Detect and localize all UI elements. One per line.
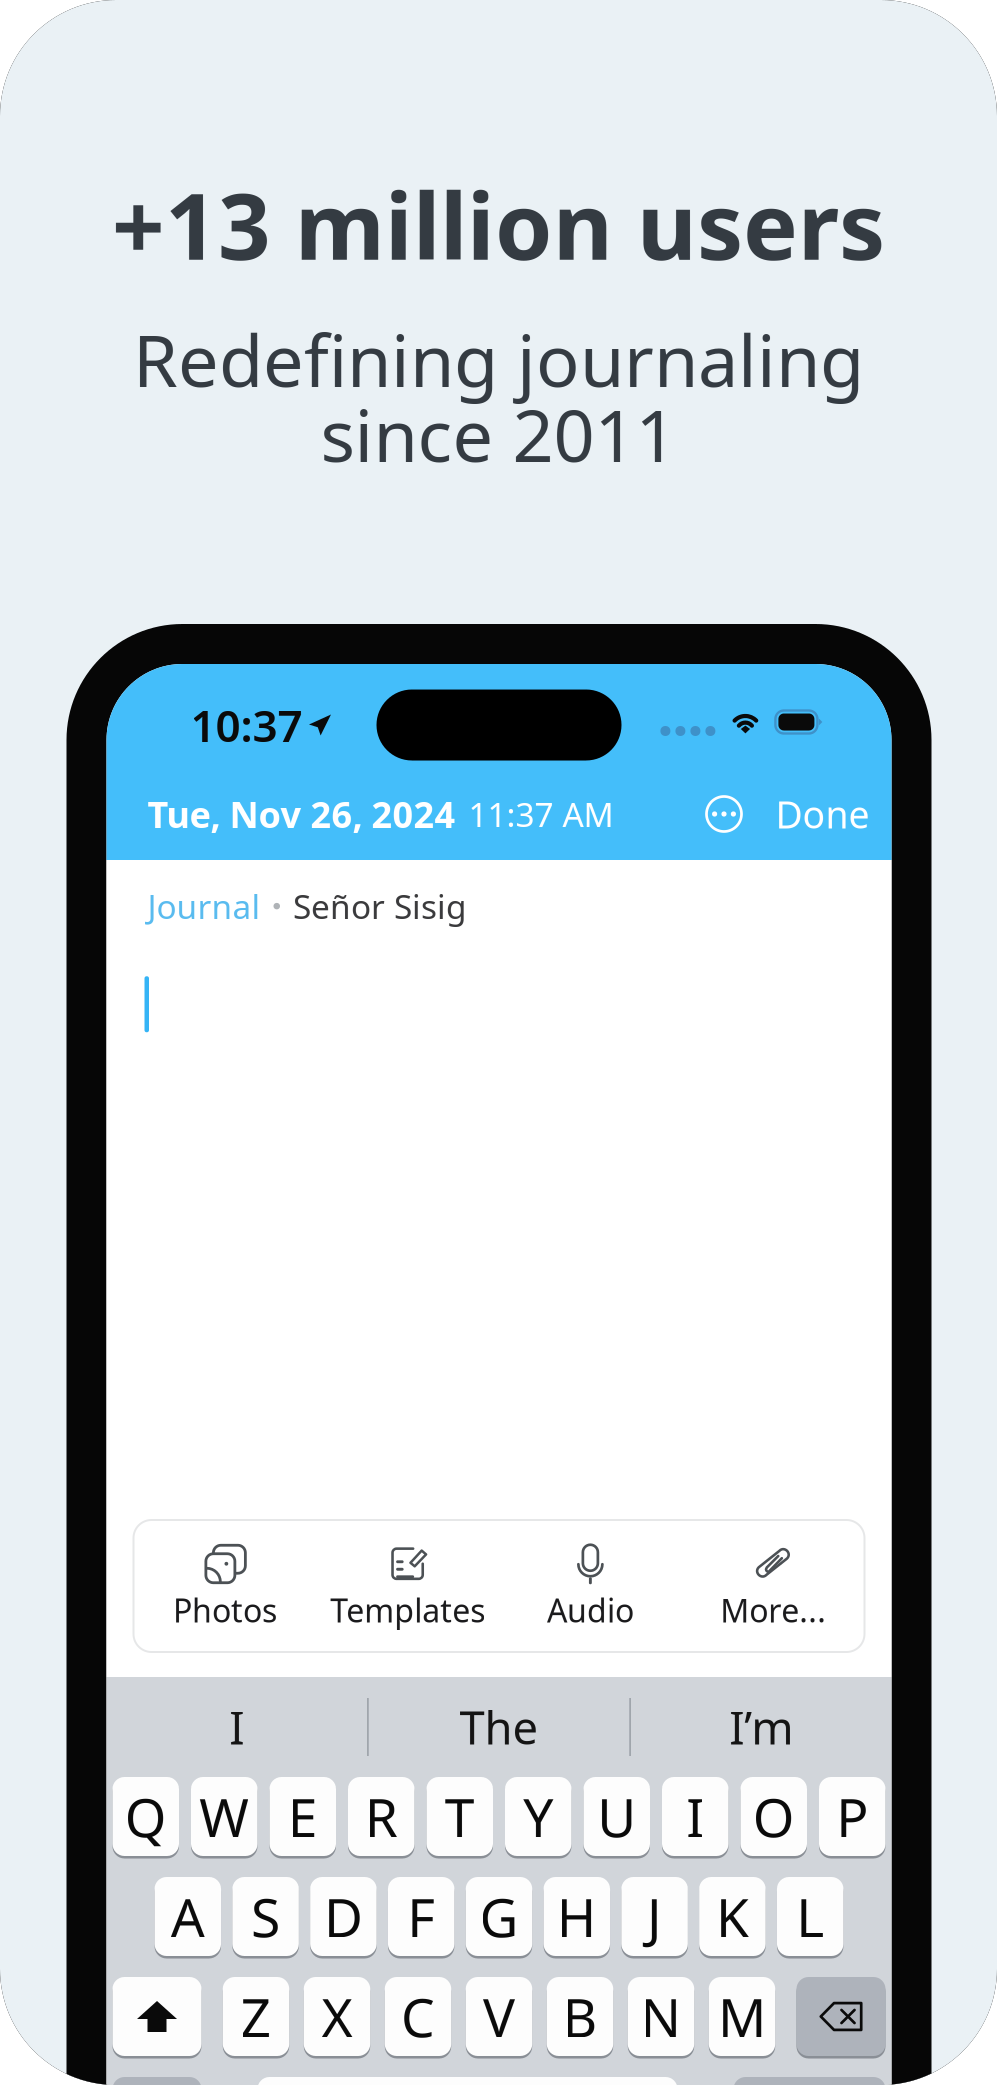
button[interactable]: H — [543, 1877, 610, 1956]
button[interactable]: More... — [682, 1520, 865, 1652]
staticText: N — [640, 1981, 681, 2052]
button[interactable]: C — [385, 1977, 451, 2056]
button[interactable]: The — [369, 1697, 629, 1757]
button[interactable]: return — [733, 2077, 885, 2085]
button[interactable]: W — [191, 1777, 257, 1856]
staticText: 11:37 AM — [468, 792, 613, 836]
button[interactable]: G — [466, 1877, 532, 1956]
staticText: I — [686, 1781, 704, 1852]
button[interactable]: U — [583, 1777, 650, 1856]
staticText: D — [324, 1881, 363, 1952]
staticText: Photos — [173, 1589, 277, 1631]
button[interactable]: N — [628, 1977, 694, 2056]
button[interactable]: A — [155, 1877, 221, 1956]
staticText: 10:37 — [190, 696, 302, 754]
staticText: since 2011 — [320, 386, 676, 482]
button[interactable]: K — [699, 1877, 766, 1956]
staticText: Señor Sisig — [293, 884, 467, 928]
button[interactable]: I — [662, 1777, 728, 1856]
staticText: J — [647, 1881, 662, 1952]
staticText: H — [557, 1881, 597, 1952]
staticText: I — [229, 1697, 244, 1757]
staticText: A — [171, 1881, 205, 1952]
staticText: Templates — [330, 1589, 485, 1631]
button[interactable]: 123 — [112, 2077, 201, 2085]
button[interactable]: X — [304, 1977, 370, 2056]
button[interactable]: Delete — [796, 1977, 885, 2056]
staticText: Y — [523, 1781, 553, 1852]
staticText: E — [288, 1781, 318, 1852]
staticText: +13 million users — [112, 163, 885, 285]
staticText: Q — [125, 1781, 167, 1852]
button[interactable]: L — [777, 1877, 843, 1956]
staticText: Done — [775, 789, 869, 839]
staticText: O — [753, 1781, 795, 1852]
staticText: C — [401, 1981, 435, 2052]
button[interactable]: Z — [223, 1977, 289, 2056]
staticText: S — [251, 1881, 280, 1952]
staticText: Tue, Nov 26, 2024 — [147, 790, 455, 838]
button[interactable]: P — [819, 1777, 885, 1856]
button[interactable]: R — [348, 1777, 414, 1856]
staticText: M — [718, 1981, 766, 2052]
staticText: Audio — [547, 1589, 634, 1631]
staticText: F — [407, 1881, 435, 1952]
staticText: B — [562, 1981, 597, 2052]
button[interactable]: S — [232, 1877, 299, 1956]
button[interactable]: Done — [742, 789, 869, 839]
button[interactable]: M — [709, 1977, 775, 2056]
button[interactable]: T — [426, 1777, 493, 1856]
button[interactable]: I — [106, 1697, 367, 1757]
staticText: W — [199, 1781, 249, 1852]
button[interactable]: space — [257, 2077, 677, 2085]
button[interactable]: V — [466, 1977, 532, 2056]
button[interactable]: More options — [705, 795, 742, 832]
button[interactable]: Y — [505, 1777, 571, 1856]
staticText: Redefining journaling — [133, 311, 864, 407]
staticText: T — [445, 1781, 475, 1852]
staticText: Journal — [147, 884, 260, 928]
button[interactable]: B — [547, 1977, 613, 2056]
staticText: I’m — [729, 1697, 793, 1757]
staticText: G — [479, 1881, 518, 1952]
button[interactable]: F — [388, 1877, 454, 1956]
button[interactable]: Shift — [112, 1977, 201, 2056]
button[interactable]: Q — [112, 1777, 179, 1856]
button[interactable]: D — [310, 1877, 377, 1956]
button[interactable]: O — [740, 1777, 807, 1856]
staticText: R — [365, 1781, 398, 1852]
staticText: Z — [240, 1981, 271, 2052]
button[interactable]: Photos — [133, 1520, 316, 1652]
staticText: The — [459, 1697, 538, 1757]
button[interactable]: I’m — [631, 1697, 891, 1757]
button[interactable]: Journal — [147, 884, 260, 928]
staticText: K — [716, 1881, 749, 1952]
staticText: V — [483, 1981, 515, 2052]
button[interactable]: Templates — [316, 1520, 499, 1652]
staticText: X — [321, 1981, 352, 2052]
staticText: U — [597, 1781, 636, 1852]
button[interactable]: E — [269, 1777, 336, 1856]
button[interactable]: Audio — [499, 1520, 682, 1652]
staticText: More... — [720, 1589, 826, 1631]
button[interactable]: J — [621, 1877, 688, 1956]
staticText: L — [796, 1881, 824, 1952]
staticText: P — [836, 1781, 868, 1852]
